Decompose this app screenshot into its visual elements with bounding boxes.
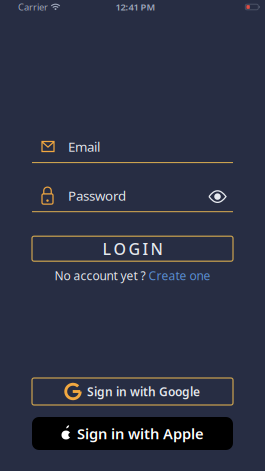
staticText: Sign in with Apple [77,424,204,443]
staticText: No account yet ? [54,268,148,284]
button[interactable]: Email [32,140,233,163]
button[interactable]: Show password [208,188,226,204]
staticText: Carrier [18,1,48,13]
button[interactable]: L O G I N [32,236,233,261]
staticText: Create one [148,268,210,284]
button[interactable]: Password [32,187,233,212]
staticText: Email [68,138,100,155]
staticText: Password [68,187,126,204]
button[interactable]: Create one [148,268,210,284]
button[interactable]: Sign in with Google [32,378,233,405]
staticText: 12:41 PM [115,1,155,13]
button[interactable]: Sign in with Apple [32,417,233,450]
staticText: L O G I N [102,238,162,259]
staticText: Sign in with Google [87,383,200,399]
